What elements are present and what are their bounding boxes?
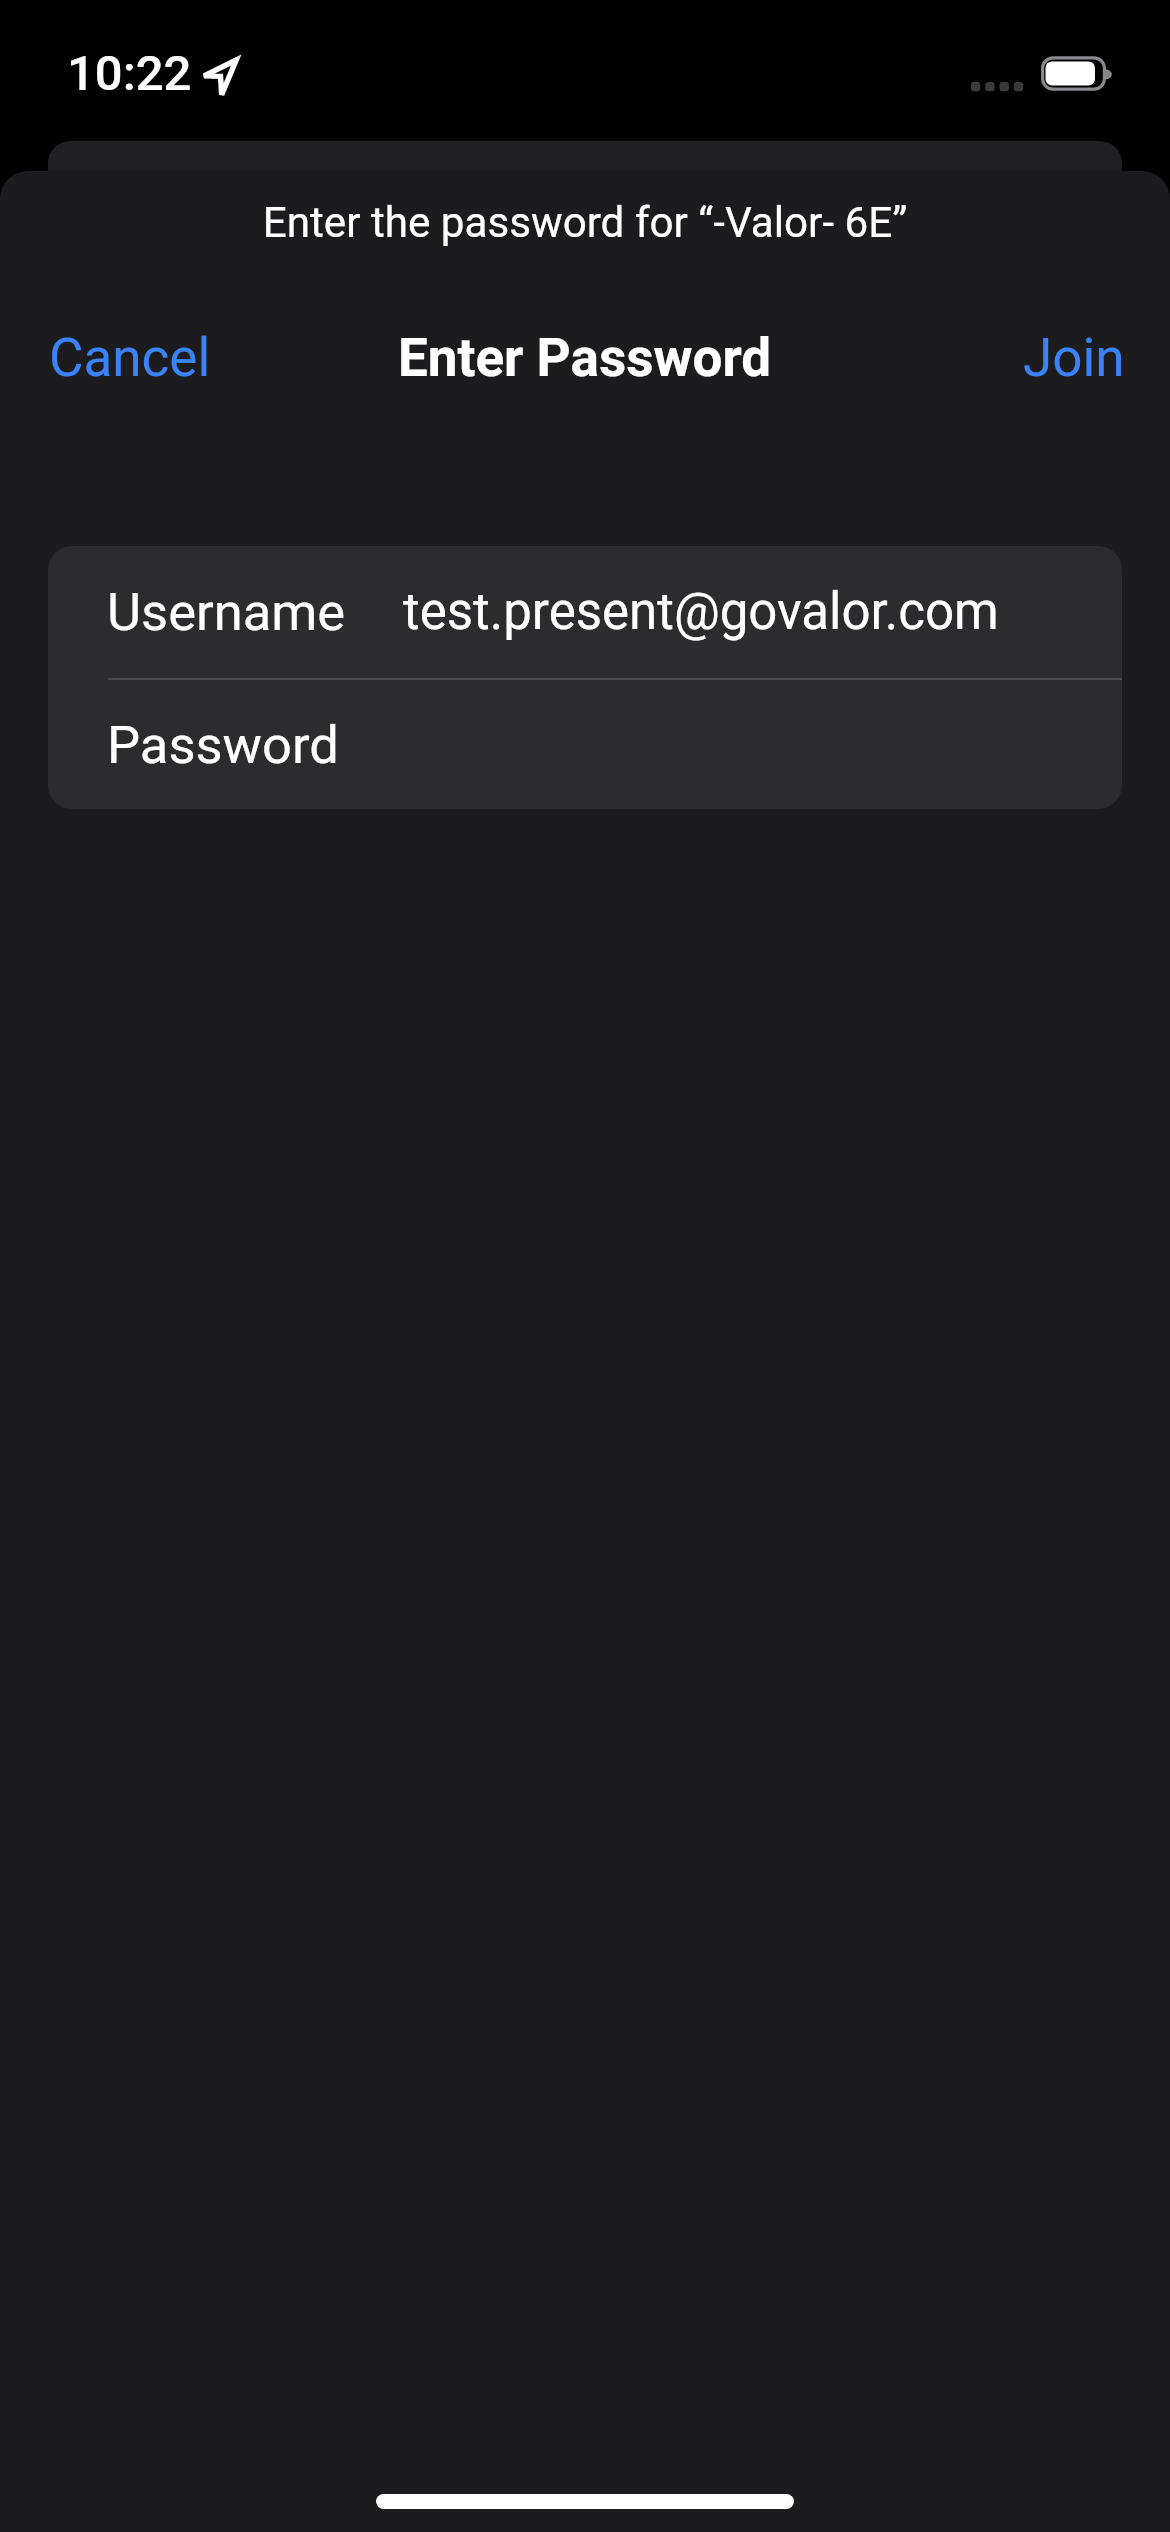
staticText: Password <box>107 714 339 776</box>
staticText: 10:22 <box>67 45 192 102</box>
staticText: Join <box>1023 327 1125 389</box>
staticText: test.present@govalor.com <box>403 582 999 642</box>
button[interactable]: Password <box>48 680 1122 809</box>
other: Battery full <box>1036 50 1120 98</box>
other: Cellular signal <box>965 78 1029 98</box>
staticText: Username <box>107 581 346 643</box>
other: Location services active <box>198 53 246 103</box>
button[interactable]: Cancel <box>0 322 231 394</box>
staticText: Enter Password <box>398 327 772 389</box>
staticText: Enter the password for “-Valor- 6E” <box>0 198 1170 247</box>
button[interactable]: Join <box>1003 322 1170 394</box>
staticText: Cancel <box>49 327 211 389</box>
button[interactable]: Username <box>48 546 1122 678</box>
